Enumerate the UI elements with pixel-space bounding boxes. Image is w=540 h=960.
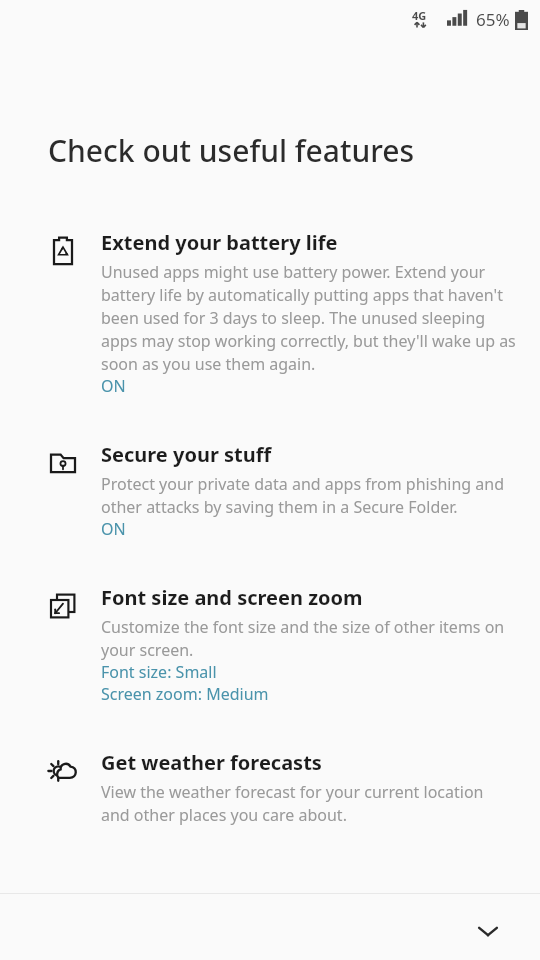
staticText: 65% (476, 8, 510, 31)
staticText: Font size and screen zoom (101, 584, 363, 611)
button[interactable]: ON (101, 518, 126, 540)
button[interactable]: ON (101, 375, 126, 397)
staticText: View the weather forecast for your curre… (101, 781, 516, 826)
button[interactable]: Get weather forecasts (0, 749, 540, 826)
staticText: Unused apps might use battery power. Ext… (101, 261, 516, 375)
staticText: Secure your stuff (101, 441, 272, 468)
button[interactable]: Screen zoom: Medium (101, 683, 269, 705)
button[interactable]: Font size and screen zoom (0, 584, 540, 705)
staticText: Protect your private data and apps from … (101, 473, 516, 518)
staticText: Get weather forecasts (101, 749, 322, 776)
staticText: Extend your battery life (101, 229, 338, 256)
staticText: 4G (412, 8, 427, 23)
button[interactable]: Secure your stuff (0, 441, 540, 540)
staticText: Customize the font size and the size of … (101, 616, 516, 661)
button[interactable]: Extend your battery life (0, 229, 540, 397)
button[interactable]: Show more (458, 901, 518, 960)
staticText: Check out useful features (48, 130, 415, 171)
button[interactable]: Font size: Small (101, 661, 217, 683)
